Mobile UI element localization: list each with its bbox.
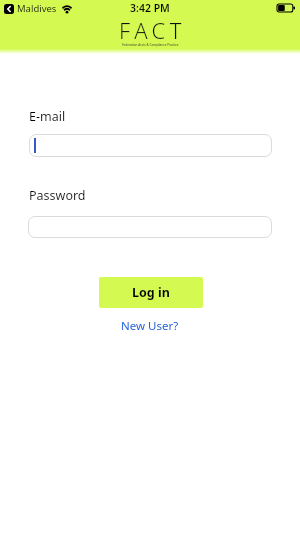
staticText: E-mail	[29, 108, 66, 125]
button[interactable]: Log in	[99, 277, 203, 308]
staticText: FACT	[119, 15, 186, 45]
staticText: Password	[29, 187, 86, 204]
staticText: Federation Accts & Compliance Practice	[122, 43, 179, 47]
button[interactable]: New User?	[121, 318, 179, 334]
staticText: Maldives	[17, 2, 57, 15]
button[interactable]	[28, 216, 272, 238]
button[interactable]	[29, 134, 272, 157]
staticText: 3:42 PM	[130, 1, 170, 15]
staticText: Log in	[132, 284, 170, 301]
